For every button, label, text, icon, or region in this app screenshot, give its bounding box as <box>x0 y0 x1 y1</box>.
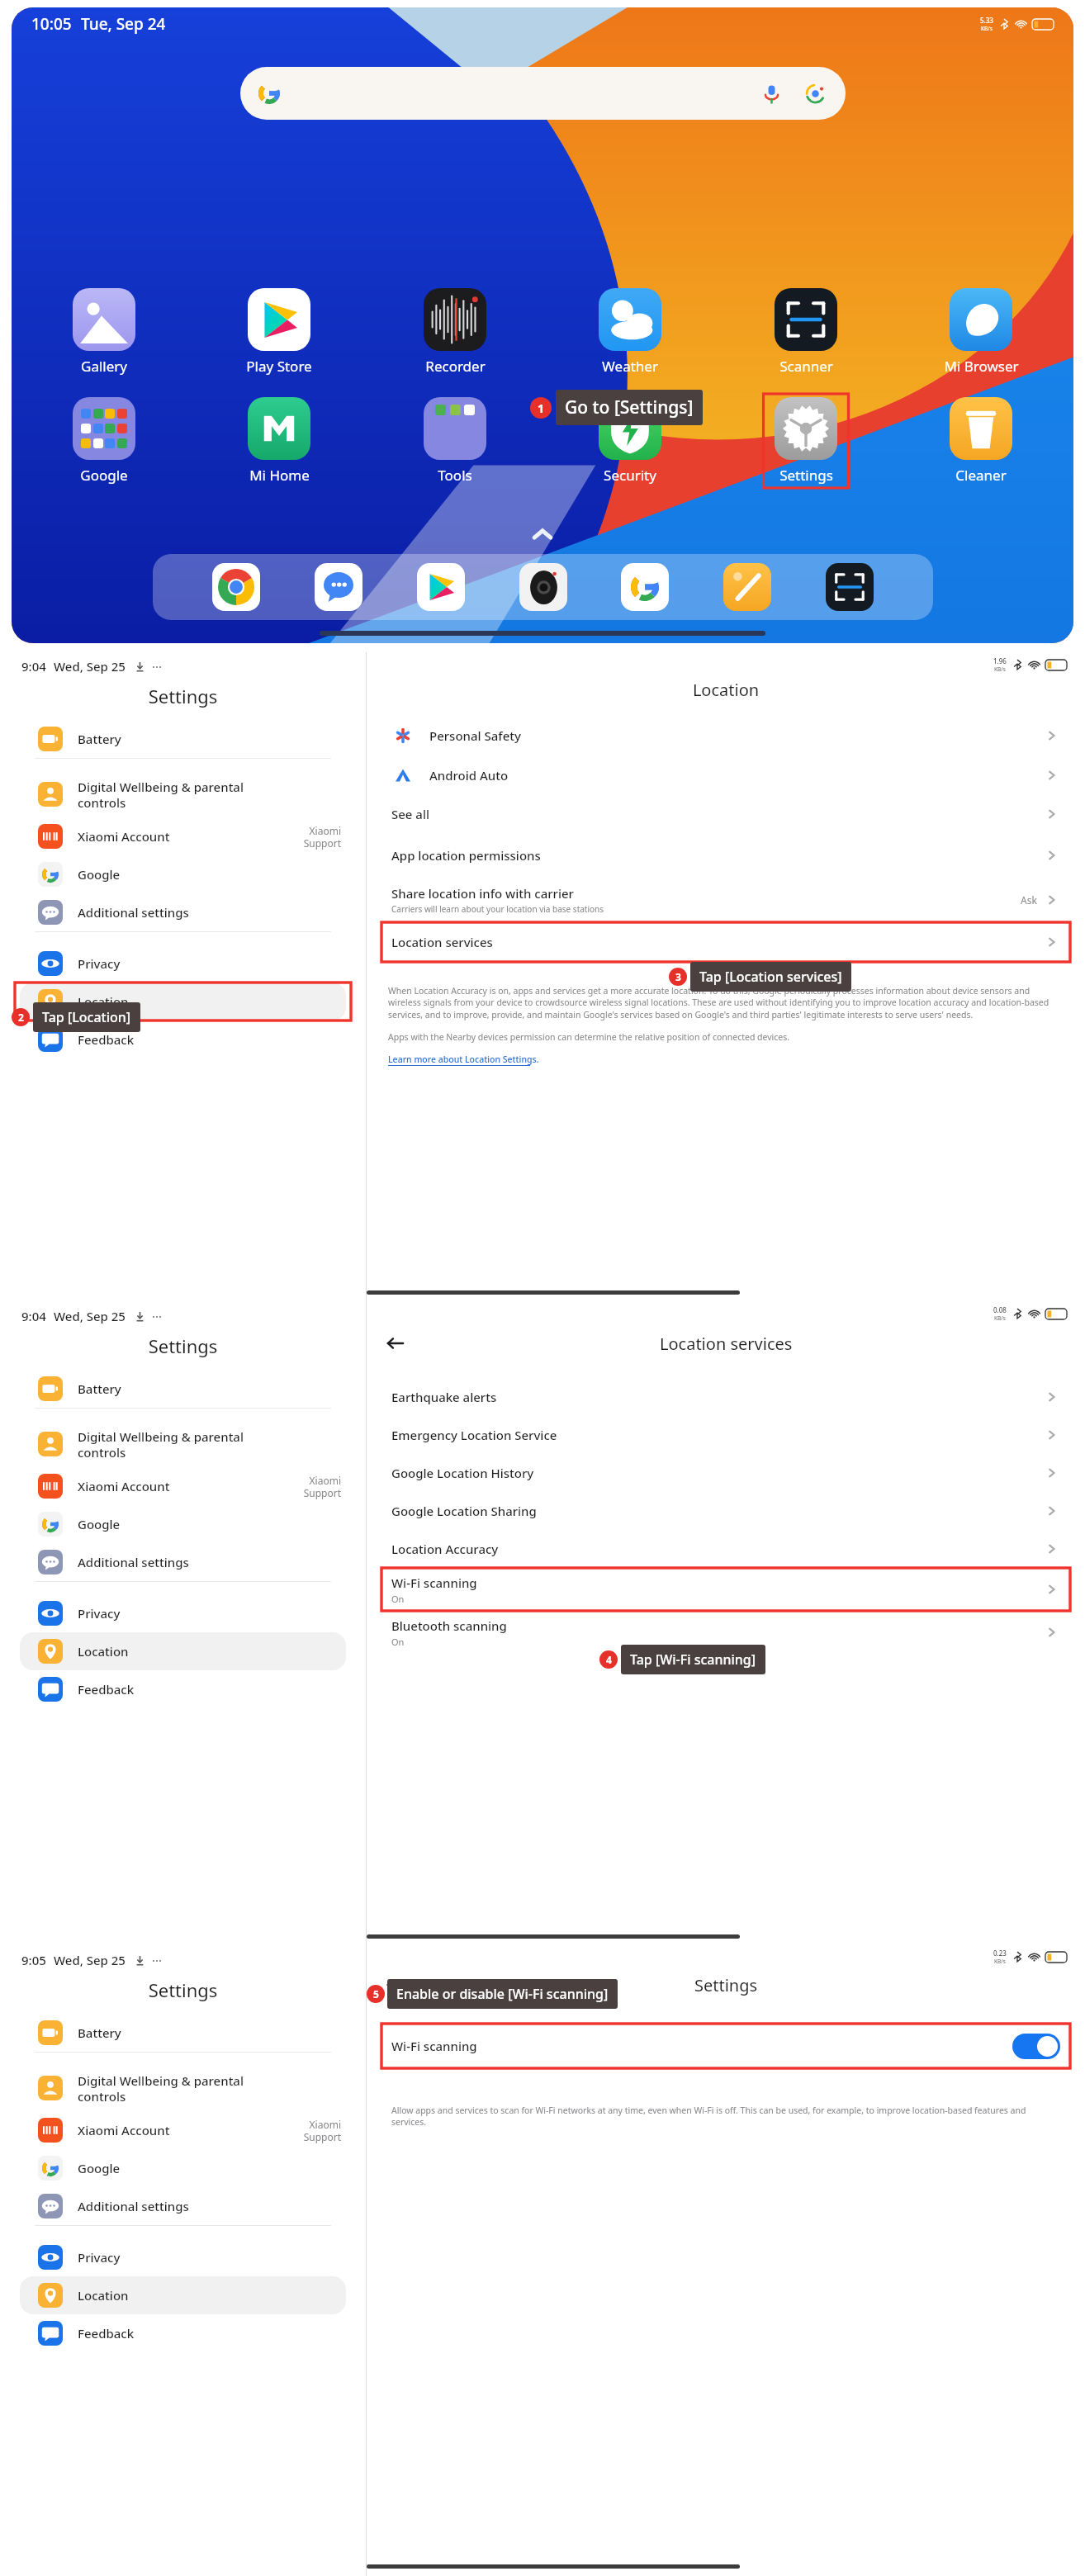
button[interactable]: Cleaner <box>930 397 1032 485</box>
staticText: ··· <box>152 1952 163 1968</box>
staticText: Google <box>78 1516 121 1532</box>
button[interactable]: Location <box>20 983 346 1020</box>
button[interactable]: Wi-Fi scanning <box>367 2024 1085 2068</box>
staticText: Privacy <box>78 1605 121 1622</box>
button[interactable]: Earthquake alerts <box>367 1378 1085 1416</box>
button[interactable]: Recorder <box>404 288 506 376</box>
staticText: 5 <box>373 1987 379 2001</box>
button[interactable]: Gallery <box>53 288 155 376</box>
button[interactable]: App location permissions <box>367 836 1085 874</box>
button[interactable]: Privacy <box>0 945 366 983</box>
staticText: Share location info with carrier <box>391 885 574 902</box>
button[interactable]: Battery <box>0 720 366 758</box>
staticText: Settings <box>0 1977 366 2002</box>
button[interactable]: Additional settings <box>0 2187 366 2225</box>
staticText: KB/s <box>981 25 993 32</box>
button[interactable]: Privacy <box>0 2238 366 2276</box>
button[interactable]: Location <box>20 1632 346 1670</box>
button[interactable]: Android Auto <box>367 755 1085 795</box>
button[interactable]: Location Accuracy <box>367 1530 1085 1568</box>
button[interactable]: Share location info with carrier <box>367 878 1085 922</box>
button[interactable]: Notes <box>723 563 771 611</box>
button[interactable]: Xiaomi Account <box>0 1467 366 1505</box>
button[interactable]: Play Store <box>417 563 465 611</box>
button[interactable]: Additional settings <box>0 1543 366 1581</box>
staticText: Feedback <box>78 1031 135 1048</box>
staticText: Additional settings <box>78 2198 189 2214</box>
staticText: 9:04 <box>21 1308 46 1324</box>
button[interactable]: Emergency Location Service <box>367 1416 1085 1454</box>
button[interactable]: Google <box>0 2149 366 2187</box>
staticText: Enable or disable [Wi-Fi scanning] <box>396 1985 609 2003</box>
button[interactable]: Mi Home <box>228 397 330 485</box>
staticText: ··· <box>152 1308 163 1324</box>
staticText: Digital Wellbeing & parental controls <box>78 779 244 811</box>
staticText: Location Accuracy <box>391 1541 499 1557</box>
button[interactable]: See all <box>367 795 1085 833</box>
staticText: Wi-Fi scanning <box>391 2038 477 2054</box>
button[interactable]: Wi-Fi scanning <box>367 1568 1085 1611</box>
button[interactable]: Personal Safety <box>367 716 1085 755</box>
staticText: Tap [Wi-Fi scanning] <box>630 1650 756 1669</box>
staticText: Apps with the Nearby devices permission … <box>388 1031 790 1043</box>
staticText: 3 <box>675 970 681 983</box>
button[interactable]: Location services <box>367 922 1085 962</box>
staticText: Privacy <box>78 955 121 972</box>
button[interactable]: Bluetooth scanning <box>367 1611 1085 1654</box>
button[interactable]: Privacy <box>0 1594 366 1632</box>
button[interactable]: Tools <box>404 397 506 485</box>
button[interactable]: Digital Wellbeing & parental controls <box>0 1421 366 1467</box>
button[interactable]: Back <box>380 1969 411 2001</box>
staticText: See all <box>391 806 430 822</box>
button[interactable]: Google <box>0 855 366 893</box>
button[interactable]: Digital Wellbeing & parental controls <box>0 771 366 817</box>
button[interactable]: Security <box>579 397 681 485</box>
button[interactable]: Scanner <box>755 288 857 376</box>
staticText: Go to [Settings] <box>565 395 694 419</box>
staticText: Location <box>78 1643 129 1660</box>
staticText: Xiaomi Account <box>78 1478 170 1494</box>
staticText: 1 <box>538 400 545 416</box>
button[interactable]: Additional settings <box>0 893 366 931</box>
staticText: Google <box>78 2160 121 2176</box>
button[interactable]: Xiaomi Account <box>0 817 366 855</box>
button[interactable]: Learn more about Location Settings. <box>388 1054 539 1066</box>
button[interactable]: Settings <box>755 397 857 485</box>
button[interactable]: Xiaomi Account <box>0 2111 366 2149</box>
button[interactable]: Digital Wellbeing & parental controls <box>0 2065 366 2111</box>
button[interactable]: Google search <box>240 67 846 120</box>
staticText: Location services <box>391 934 493 950</box>
staticText: On <box>391 1636 405 1648</box>
button[interactable]: Feedback <box>0 1670 366 1708</box>
staticText: Carriers will learn about your location … <box>391 903 604 915</box>
staticText: Recorder <box>425 357 486 376</box>
staticText: Xiaomi Support <box>303 2118 341 2143</box>
staticText: Wed, Sep 25 <box>54 1952 126 1968</box>
staticText: Mi Browser <box>944 357 1019 376</box>
staticText: Settings <box>779 466 833 485</box>
button[interactable]: Battery <box>0 2014 366 2052</box>
button[interactable]: Mi Browser <box>930 288 1032 376</box>
button[interactable]: Google Location Sharing <box>367 1492 1085 1530</box>
button[interactable]: Weather <box>579 288 681 376</box>
button[interactable]: Messages <box>315 563 362 611</box>
button[interactable]: Camera <box>519 563 567 611</box>
staticText: Feedback <box>78 1681 135 1698</box>
button[interactable]: Scanner <box>826 563 874 611</box>
button[interactable]: Google <box>621 563 669 611</box>
button[interactable]: Google <box>0 1505 366 1543</box>
button[interactable]: Feedback <box>0 1020 366 1058</box>
button[interactable]: Feedback <box>0 2314 366 2352</box>
staticText: Xiaomi Account <box>78 828 170 845</box>
button[interactable]: Location <box>20 2276 346 2314</box>
button[interactable]: Battery <box>0 1370 366 1408</box>
staticText: 10:05 <box>31 13 72 35</box>
button[interactable]: Chrome <box>212 563 260 611</box>
button[interactable]: Back <box>380 1328 411 1359</box>
button[interactable]: Google Location History <box>367 1454 1085 1492</box>
button[interactable]: Google <box>53 397 155 485</box>
staticText: Settings <box>694 1974 758 1996</box>
staticText: Settings <box>0 684 366 708</box>
button[interactable]: Play Store <box>228 288 330 376</box>
staticText: Feedback <box>78 2325 135 2342</box>
